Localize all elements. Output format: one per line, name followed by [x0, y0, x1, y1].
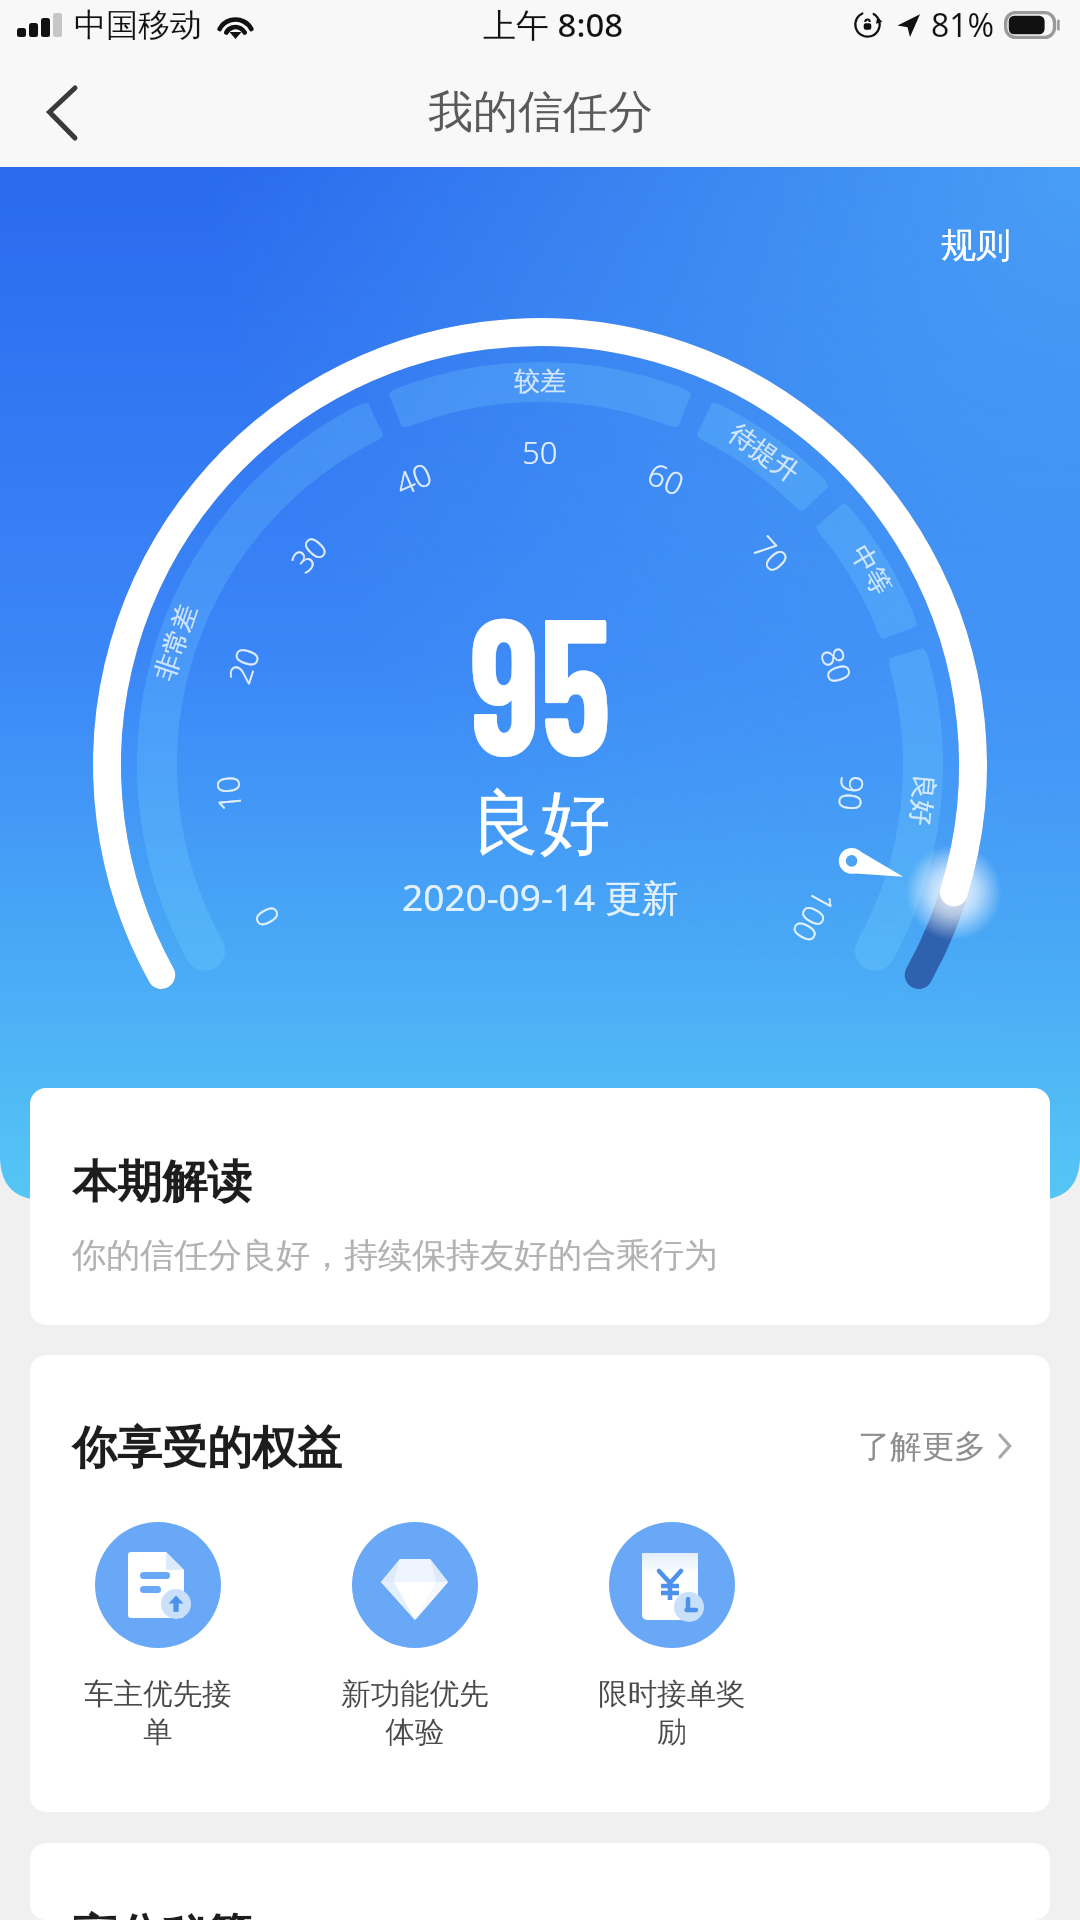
button[interactable]: 本期解读 — [30, 1088, 1050, 1325]
staticText: 81% — [931, 3, 995, 47]
staticText: 高分秘籍 — [72, 1908, 252, 1920]
button[interactable]: Back — [10, 60, 115, 165]
staticText: 本期解读 — [72, 1154, 252, 1211]
staticText: 我的信任分 — [428, 84, 653, 141]
staticText: 中国移动 — [74, 5, 202, 45]
staticText: 2020-09-14 更新 — [402, 871, 679, 922]
button[interactable]: 限时接单奖 励 — [572, 1522, 772, 1750]
button[interactable]: 规则 — [933, 217, 1019, 273]
staticText: 车主优先接 单 — [84, 1676, 232, 1750]
staticText: 限时接单奖 励 — [598, 1676, 746, 1750]
staticText: 规则 — [941, 223, 1011, 267]
staticText: 新功能优先 体验 — [341, 1676, 489, 1750]
staticText: 你享受的权益 — [72, 1420, 342, 1477]
staticText: 你的信任分良好，持续保持友好的合乘行为 — [72, 1234, 718, 1277]
staticText: 95 — [469, 562, 611, 794]
staticText: 了解更多 — [858, 1426, 986, 1466]
staticText: 上午 8:08 — [483, 2, 624, 47]
button[interactable]: 车主优先接 单 — [58, 1522, 258, 1750]
button[interactable]: 新功能优先 体验 — [315, 1522, 515, 1750]
button[interactable]: 了解更多 — [850, 1420, 1019, 1472]
staticText: 良好 — [470, 780, 610, 868]
